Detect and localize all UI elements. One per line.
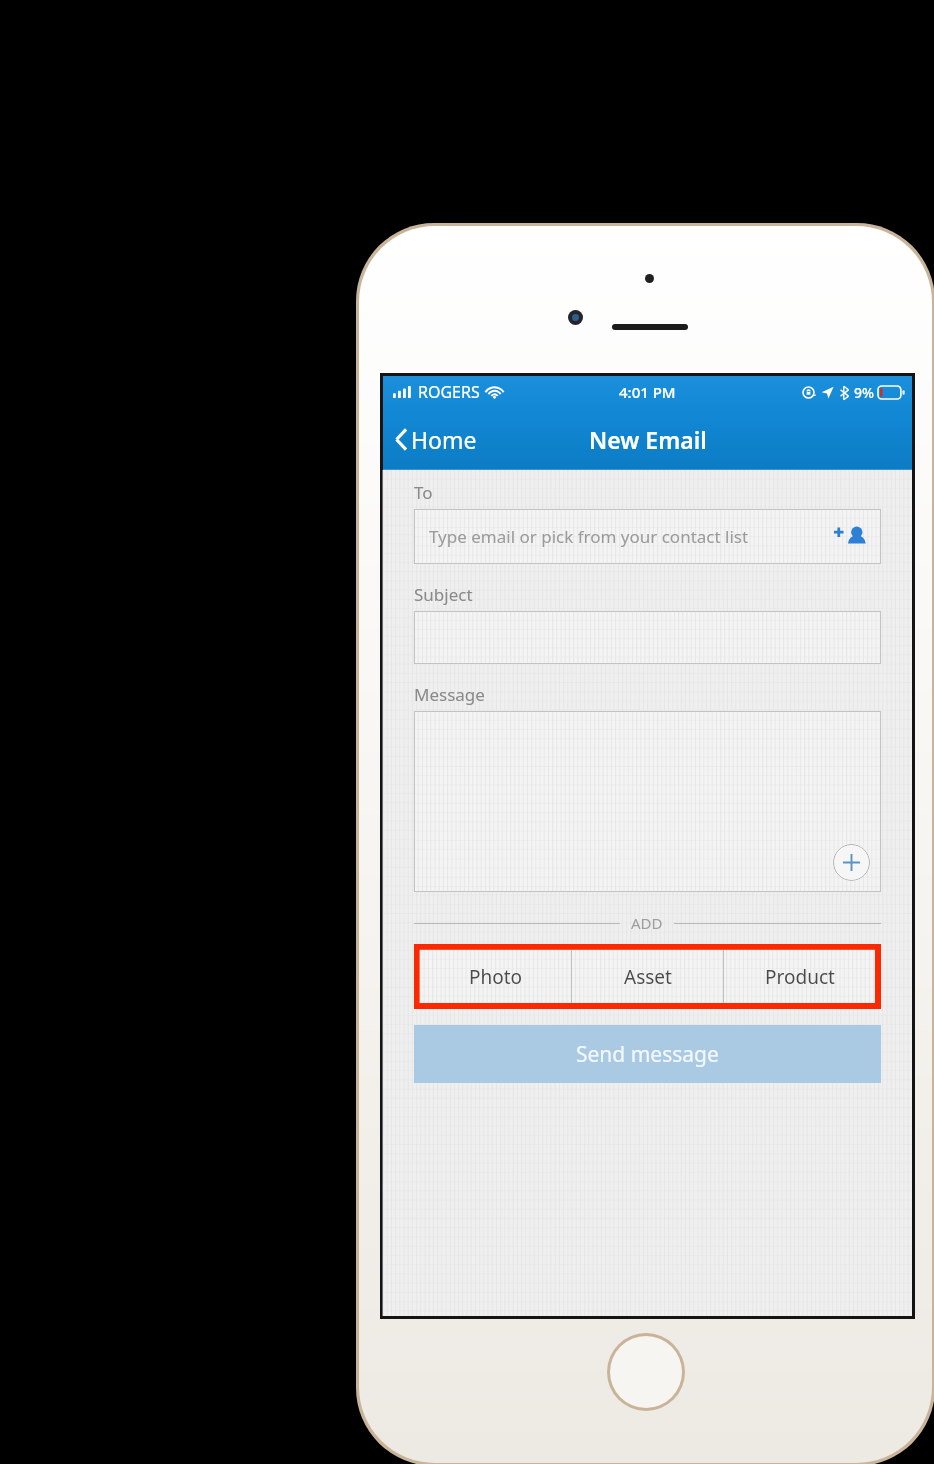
staticText: Photo	[469, 964, 523, 990]
staticText: 4:01 PM	[619, 382, 676, 402]
staticText: To	[414, 481, 433, 504]
button[interactable]: Home	[383, 418, 489, 461]
staticText: 9%	[854, 383, 874, 402]
button[interactable]: Type email or pick from your contact lis…	[414, 509, 881, 564]
staticText: Type email or pick from your contact lis…	[429, 525, 749, 548]
staticText: ADD	[631, 913, 663, 933]
button[interactable]: Send message	[414, 1025, 881, 1083]
button[interactable]: Pick contact	[833, 525, 867, 549]
button[interactable]: Home	[610, 1336, 682, 1408]
button[interactable]: Photo	[420, 950, 571, 1003]
staticText: Home	[411, 424, 477, 455]
staticText: Subject	[414, 583, 473, 606]
button[interactable]: Add attachment	[833, 844, 870, 881]
staticText: ROGERS	[418, 381, 480, 403]
button[interactable]	[414, 611, 881, 664]
staticText: Asset	[624, 964, 672, 990]
staticText: New Email	[589, 424, 707, 455]
staticText: Product	[765, 964, 835, 990]
button[interactable]: Asset	[572, 950, 723, 1003]
staticText: Message	[414, 683, 485, 706]
button[interactable]: Add attachment	[414, 711, 881, 892]
button[interactable]: Product	[724, 950, 875, 1003]
staticText: Send message	[576, 1040, 719, 1069]
